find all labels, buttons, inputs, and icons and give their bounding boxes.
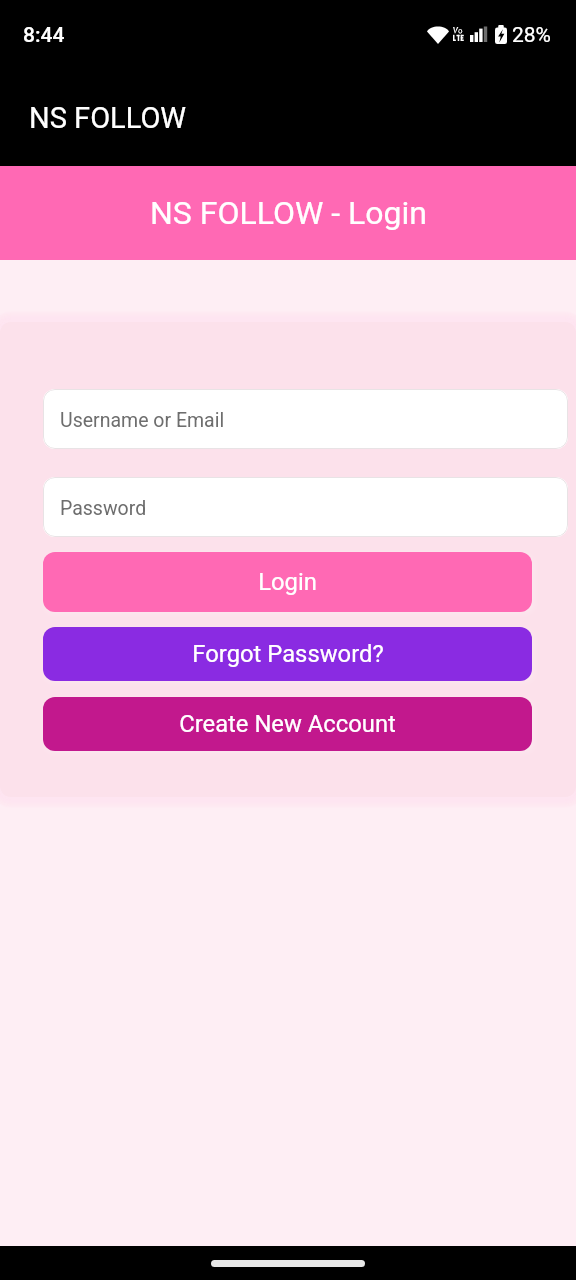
other: Battery charging	[495, 25, 507, 44]
button[interactable]: Login	[43, 552, 532, 612]
staticText: NS FOLLOW - Login	[150, 194, 427, 232]
staticText: Forgot Password?	[192, 640, 384, 668]
button[interactable]: Forgot Password?	[43, 627, 532, 681]
button[interactable]: Password	[43, 477, 568, 537]
staticText: Create New Account	[179, 710, 396, 738]
other: VoLTE	[453, 27, 464, 41]
other: Wi-Fi	[427, 26, 449, 44]
staticText: 28%	[512, 23, 551, 48]
staticText: 8:44	[23, 23, 65, 48]
other: Mobile signal	[470, 26, 487, 42]
staticText: NS FOLLOW	[29, 101, 187, 135]
staticText: Username or Email	[60, 409, 225, 432]
staticText: Password	[60, 497, 147, 520]
button[interactable]: Username or Email	[43, 389, 568, 449]
staticText: Login	[258, 568, 317, 596]
button[interactable]: Create New Account	[43, 697, 532, 751]
button[interactable]: Home	[211, 1260, 365, 1267]
